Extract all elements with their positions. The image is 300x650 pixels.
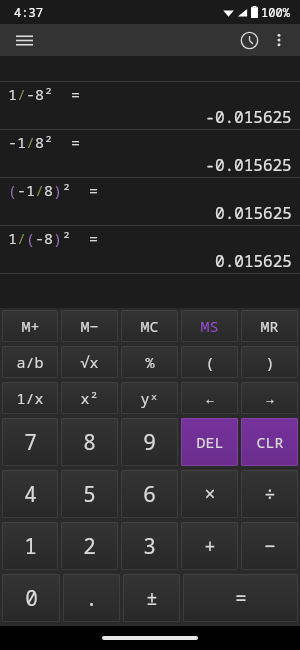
button[interactable]: MC xyxy=(121,310,178,342)
button[interactable]: 1 xyxy=(2,522,58,570)
staticText: 1/-8² = xyxy=(8,84,81,104)
staticText: − xyxy=(264,533,276,559)
staticText: MS xyxy=(200,316,219,336)
button[interactable]: 6 xyxy=(121,470,178,518)
button[interactable]: a/b xyxy=(2,346,58,378)
staticText: -0.015625 xyxy=(205,106,292,128)
button[interactable]: DEL xyxy=(181,418,238,466)
staticText: ( xyxy=(205,352,215,372)
button[interactable]: ( xyxy=(181,346,238,378)
button[interactable]: % xyxy=(121,346,178,378)
staticText: M− xyxy=(80,316,99,336)
staticText: MR xyxy=(260,316,279,336)
button[interactable]: 3 xyxy=(121,522,178,570)
button[interactable]: × xyxy=(181,470,238,518)
button[interactable]: yˣ xyxy=(121,382,178,414)
button[interactable]: + xyxy=(181,522,238,570)
button[interactable]: 7 xyxy=(2,418,58,466)
button[interactable]: Menu xyxy=(10,26,38,54)
staticText: → xyxy=(265,388,275,408)
button[interactable]: . xyxy=(63,574,120,622)
staticText: 2 xyxy=(83,532,96,561)
staticText: a/b xyxy=(16,352,44,372)
button[interactable]: ÷ xyxy=(241,470,298,518)
staticText: ÷ xyxy=(264,481,276,507)
button[interactable]: (-1/8)² = xyxy=(0,178,300,225)
staticText: % xyxy=(145,352,155,372)
staticText: = xyxy=(235,585,247,611)
staticText: MC xyxy=(140,316,159,336)
button[interactable]: M− xyxy=(61,310,118,342)
staticText: ← xyxy=(205,388,215,408)
staticText: 4 xyxy=(24,480,37,509)
button[interactable]: History xyxy=(234,25,264,55)
staticText: √x xyxy=(80,352,99,372)
staticText: -0.015625 xyxy=(205,154,292,176)
staticText: × xyxy=(204,481,216,507)
button[interactable]: 1/x xyxy=(2,382,58,414)
button[interactable]: 8 xyxy=(61,418,118,466)
button[interactable]: 4 xyxy=(2,470,58,518)
button[interactable]: − xyxy=(241,522,298,570)
button[interactable]: 2 xyxy=(61,522,118,570)
button[interactable]: = xyxy=(183,574,298,622)
button[interactable]: √x xyxy=(61,346,118,378)
staticText: ± xyxy=(146,585,158,611)
button[interactable]: M+ xyxy=(2,310,58,342)
staticText: 8 xyxy=(83,428,96,457)
button[interactable]: ← xyxy=(181,382,238,414)
staticText: 3 xyxy=(143,532,156,561)
button[interactable]: MR xyxy=(241,310,298,342)
staticText: -1/8² = xyxy=(8,132,81,152)
button[interactable]: 1/-8² = xyxy=(0,82,300,129)
staticText: M+ xyxy=(21,316,40,336)
staticText: 9 xyxy=(143,428,156,457)
staticText: 1/x xyxy=(16,388,44,408)
staticText: . xyxy=(85,584,98,613)
staticText: ) xyxy=(265,352,275,372)
staticText: DEL xyxy=(196,432,224,452)
staticText: CLR xyxy=(256,432,284,452)
button[interactable]: MS xyxy=(181,310,238,342)
button[interactable]: -1/8² = xyxy=(0,130,300,177)
button[interactable]: 1/(-8)² = xyxy=(0,226,300,273)
staticText: 100% xyxy=(261,4,290,20)
staticText: 4:37 xyxy=(14,4,43,20)
staticText: 0.015625 xyxy=(215,250,292,272)
staticText: 0.015625 xyxy=(215,202,292,224)
button[interactable]: → xyxy=(241,382,298,414)
staticText: yˣ xyxy=(140,388,159,408)
staticText: x² xyxy=(80,388,99,408)
button[interactable]: 5 xyxy=(61,470,118,518)
staticText: + xyxy=(204,533,216,559)
button[interactable]: More options xyxy=(264,25,294,55)
button[interactable]: 9 xyxy=(121,418,178,466)
button[interactable]: ± xyxy=(123,574,180,622)
staticText: 5 xyxy=(83,480,96,509)
button[interactable]: x² xyxy=(61,382,118,414)
staticText: 1 xyxy=(24,532,37,561)
staticText: 6 xyxy=(143,480,156,509)
staticText: 7 xyxy=(24,428,37,457)
button[interactable]: ) xyxy=(241,346,298,378)
button[interactable]: 0 xyxy=(2,574,60,622)
staticText: (-1/8)² = xyxy=(8,180,99,200)
staticText: 1/(-8)² = xyxy=(8,228,99,248)
staticText: 0 xyxy=(25,584,38,613)
button[interactable]: CLR xyxy=(241,418,298,466)
